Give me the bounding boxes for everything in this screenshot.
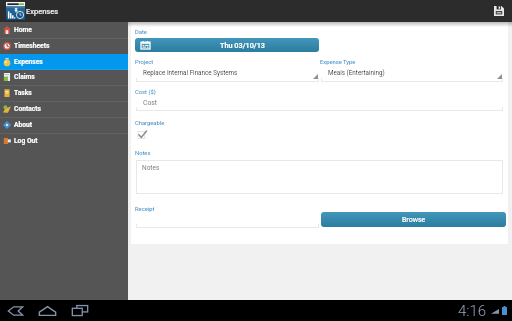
button[interactable]: Home [0,22,128,38]
staticText: Meals (Entertaining) [328,69,385,76]
staticText: Expenses [14,58,43,66]
staticText: Log Out [14,137,38,145]
button[interactable]: Save [488,0,510,22]
staticText: Date [135,29,147,36]
button[interactable]: Browse [321,212,506,227]
staticText: Home [14,26,32,34]
staticText: Browse [402,216,426,224]
staticText: Notes [142,164,160,172]
staticText: About [14,121,33,129]
staticText: Notes [135,150,151,157]
button[interactable]: About [0,117,128,133]
staticText: Thu 03/10/13 [220,41,265,50]
staticText: Replace Internal Finance Systems [143,69,238,76]
button[interactable]: Thu 03/10/13 [135,38,319,52]
staticText: Tasks [14,89,32,97]
staticText: Expenses [26,7,59,16]
staticText: Cost [143,99,158,107]
staticText: Claims [14,73,35,81]
button[interactable]: Timesheets [0,38,128,54]
button[interactable]: Notes [136,160,503,194]
button[interactable]: Meals (Entertaining) [321,67,503,82]
staticText: Project [135,59,154,66]
button[interactable]: Replace Internal Finance Systems [136,67,319,82]
button[interactable]: Recent apps [69,300,90,321]
button[interactable]: Claims [0,69,128,85]
staticText: Timesheets [14,42,50,50]
button[interactable]: Cost [136,97,503,111]
staticText: Cost ($) [135,89,156,96]
staticText: 4:16 [458,302,487,320]
staticText: Contacts [14,105,41,113]
button[interactable]: Tasks [0,85,128,101]
button[interactable]: Chargeable [136,129,147,140]
button[interactable]: Expenses [0,54,128,70]
button[interactable]: Back [5,300,26,321]
staticText: Receipt [135,206,155,213]
button[interactable]: Contacts [0,101,128,117]
staticText: Expense Type [320,59,356,66]
button[interactable]: Home [37,300,58,321]
button[interactable]: Log Out [0,133,128,149]
staticText: Chargeable [135,120,165,127]
